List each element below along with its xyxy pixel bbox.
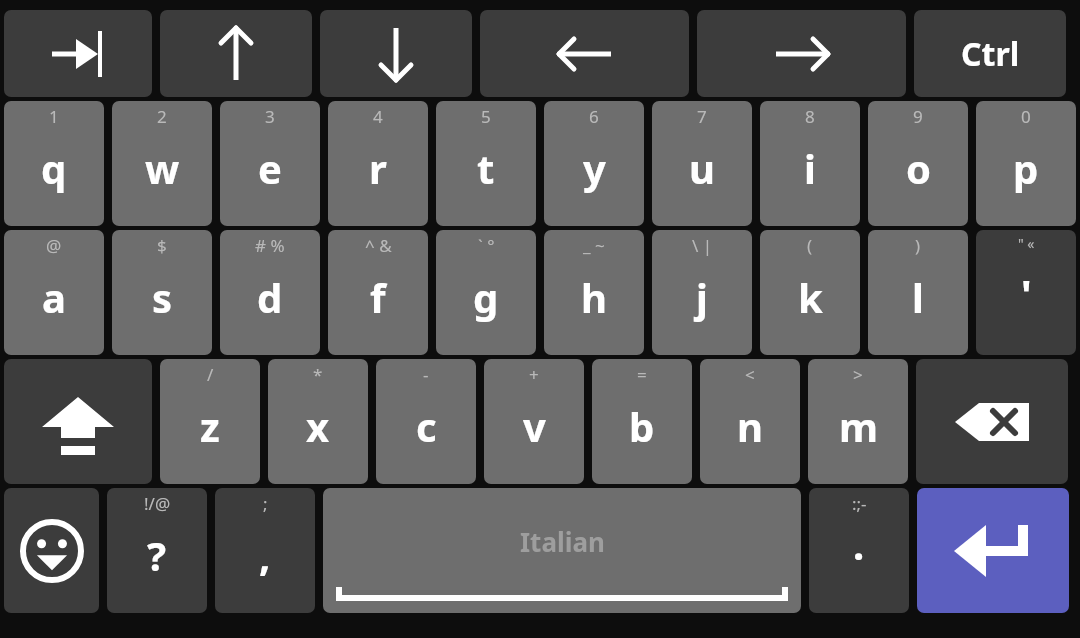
staticText: = <box>637 363 647 386</box>
staticText: · <box>853 528 865 582</box>
staticText: !/@ <box>144 492 171 515</box>
staticText: y <box>583 141 606 195</box>
staticText: @ <box>46 234 62 257</box>
staticText: p <box>1013 141 1039 195</box>
staticText: c <box>416 399 437 453</box>
staticText: d <box>257 270 283 324</box>
button[interactable]: " « <box>976 230 1076 355</box>
button[interactable]: 0 <box>976 101 1076 226</box>
staticText: j <box>696 270 708 324</box>
button[interactable]: Down <box>320 10 472 97</box>
staticText: o <box>906 141 931 195</box>
button[interactable]: :;- <box>809 488 909 613</box>
staticText: ' <box>1021 266 1032 320</box>
button[interactable]: Enter <box>917 488 1069 613</box>
staticText: / <box>207 363 214 386</box>
button[interactable]: $ <box>112 230 212 355</box>
staticText: a <box>42 270 66 324</box>
button[interactable]: Backspace <box>916 359 1068 484</box>
staticText: 2 <box>157 105 167 128</box>
button[interactable]: 6 <box>544 101 644 226</box>
staticText: x <box>306 399 330 453</box>
staticText: * <box>313 363 323 386</box>
staticText: 8 <box>805 105 815 128</box>
staticText: ( <box>807 234 813 257</box>
button[interactable]: 7 <box>652 101 752 226</box>
staticText: ? <box>147 528 167 582</box>
staticText: k <box>798 270 823 324</box>
staticText: 5 <box>481 105 491 128</box>
staticText: q <box>41 141 67 195</box>
button[interactable]: + <box>484 359 584 484</box>
button[interactable]: ; <box>215 488 315 613</box>
staticText: b <box>629 399 655 453</box>
button[interactable]: 3 <box>220 101 320 226</box>
staticText: u <box>689 141 715 195</box>
button[interactable]: !/@ <box>107 488 207 613</box>
staticText: t <box>477 141 495 195</box>
staticText: " « <box>1018 234 1035 253</box>
button[interactable]: ) <box>868 230 968 355</box>
staticText: ; <box>263 492 268 515</box>
staticText: < <box>745 363 755 386</box>
staticText: e <box>258 141 282 195</box>
staticText: z <box>200 399 220 453</box>
staticText: m <box>839 399 878 453</box>
staticText: + <box>529 363 539 386</box>
staticText: 7 <box>697 105 707 128</box>
button[interactable]: ^ & <box>328 230 428 355</box>
button[interactable]: > <box>808 359 908 484</box>
staticText: 1 <box>49 105 59 128</box>
staticText: Italian <box>520 524 605 559</box>
staticText: h <box>581 270 607 324</box>
button[interactable]: 4 <box>328 101 428 226</box>
button[interactable]: ` ° <box>436 230 536 355</box>
button[interactable]: # % <box>220 230 320 355</box>
button[interactable]: Tab <box>4 10 152 97</box>
staticText: 0 <box>1021 105 1031 128</box>
staticText: 4 <box>373 105 383 128</box>
button[interactable]: < <box>700 359 800 484</box>
button[interactable]: 5 <box>436 101 536 226</box>
button[interactable]: @ <box>4 230 104 355</box>
staticText: # % <box>255 234 285 257</box>
button[interactable]: 8 <box>760 101 860 226</box>
staticText: , <box>259 528 271 582</box>
staticText: > <box>853 363 863 386</box>
button[interactable]: = <box>592 359 692 484</box>
button[interactable]: 2 <box>112 101 212 226</box>
button[interactable]: Up <box>160 10 312 97</box>
staticText: - <box>423 363 429 386</box>
button[interactable]: 9 <box>868 101 968 226</box>
staticText: r <box>369 141 387 195</box>
button[interactable]: Emoji <box>4 488 99 613</box>
staticText: s <box>152 270 173 324</box>
button[interactable]: * <box>268 359 368 484</box>
staticText: n <box>737 399 763 453</box>
button[interactable]: ( <box>760 230 860 355</box>
staticText: :;- <box>852 492 867 515</box>
staticText: ) <box>915 234 921 257</box>
staticText: w <box>145 141 180 195</box>
staticText: l <box>912 270 924 324</box>
button[interactable]: Ctrl <box>914 10 1066 97</box>
staticText: $ <box>157 234 167 257</box>
button[interactable]: Space <box>323 488 801 613</box>
staticText: _ ~ <box>583 234 605 257</box>
button[interactable]: Left <box>480 10 689 97</box>
button[interactable]: 1 <box>4 101 104 226</box>
staticText: i <box>804 141 816 195</box>
staticText: g <box>473 270 499 324</box>
staticText: \ | <box>692 234 713 257</box>
staticText: 3 <box>265 105 275 128</box>
button[interactable]: _ ~ <box>544 230 644 355</box>
button[interactable]: \ | <box>652 230 752 355</box>
staticText: 6 <box>589 105 599 128</box>
staticText: f <box>370 270 386 324</box>
button[interactable]: - <box>376 359 476 484</box>
button[interactable]: / <box>160 359 260 484</box>
button[interactable]: Shift <box>4 359 152 484</box>
staticText: v <box>523 399 546 453</box>
staticText: Ctrl <box>961 32 1020 76</box>
button[interactable]: Right <box>697 10 906 97</box>
